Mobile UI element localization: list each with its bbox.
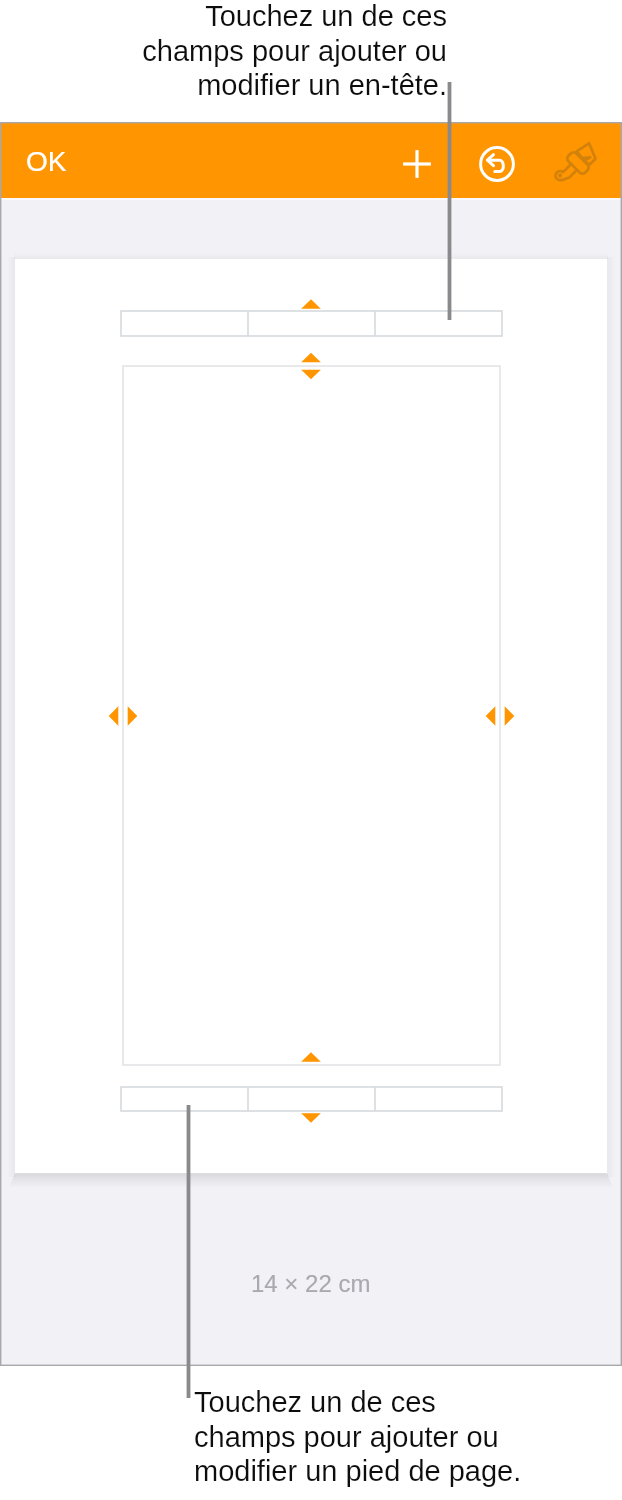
button[interactable]: Champ d’en-tête gauche (121, 311, 248, 336)
staticText: OK (26, 146, 67, 177)
button[interactable]: Champ de pied de page gauche (121, 1087, 248, 1111)
button[interactable]: Undo (466, 133, 527, 194)
staticText: Touchez un de ces champs pour ajouter ou… (137, 0, 447, 101)
button[interactable]: Champ de pied de page droit (375, 1087, 502, 1111)
staticText: Touchez un de ces champs pour ajouter ou… (194, 1386, 526, 1487)
button[interactable]: Champ de pied de page central (248, 1087, 375, 1111)
button[interactable]: Champ d’en-tête central (248, 311, 375, 336)
button[interactable]: OK (9, 125, 83, 198)
staticText: 14 × 22 cm (251, 1270, 371, 1297)
button[interactable]: Format (548, 133, 608, 193)
button[interactable]: Add (386, 133, 447, 194)
button[interactable]: Champ d’en-tête droit (375, 311, 502, 336)
